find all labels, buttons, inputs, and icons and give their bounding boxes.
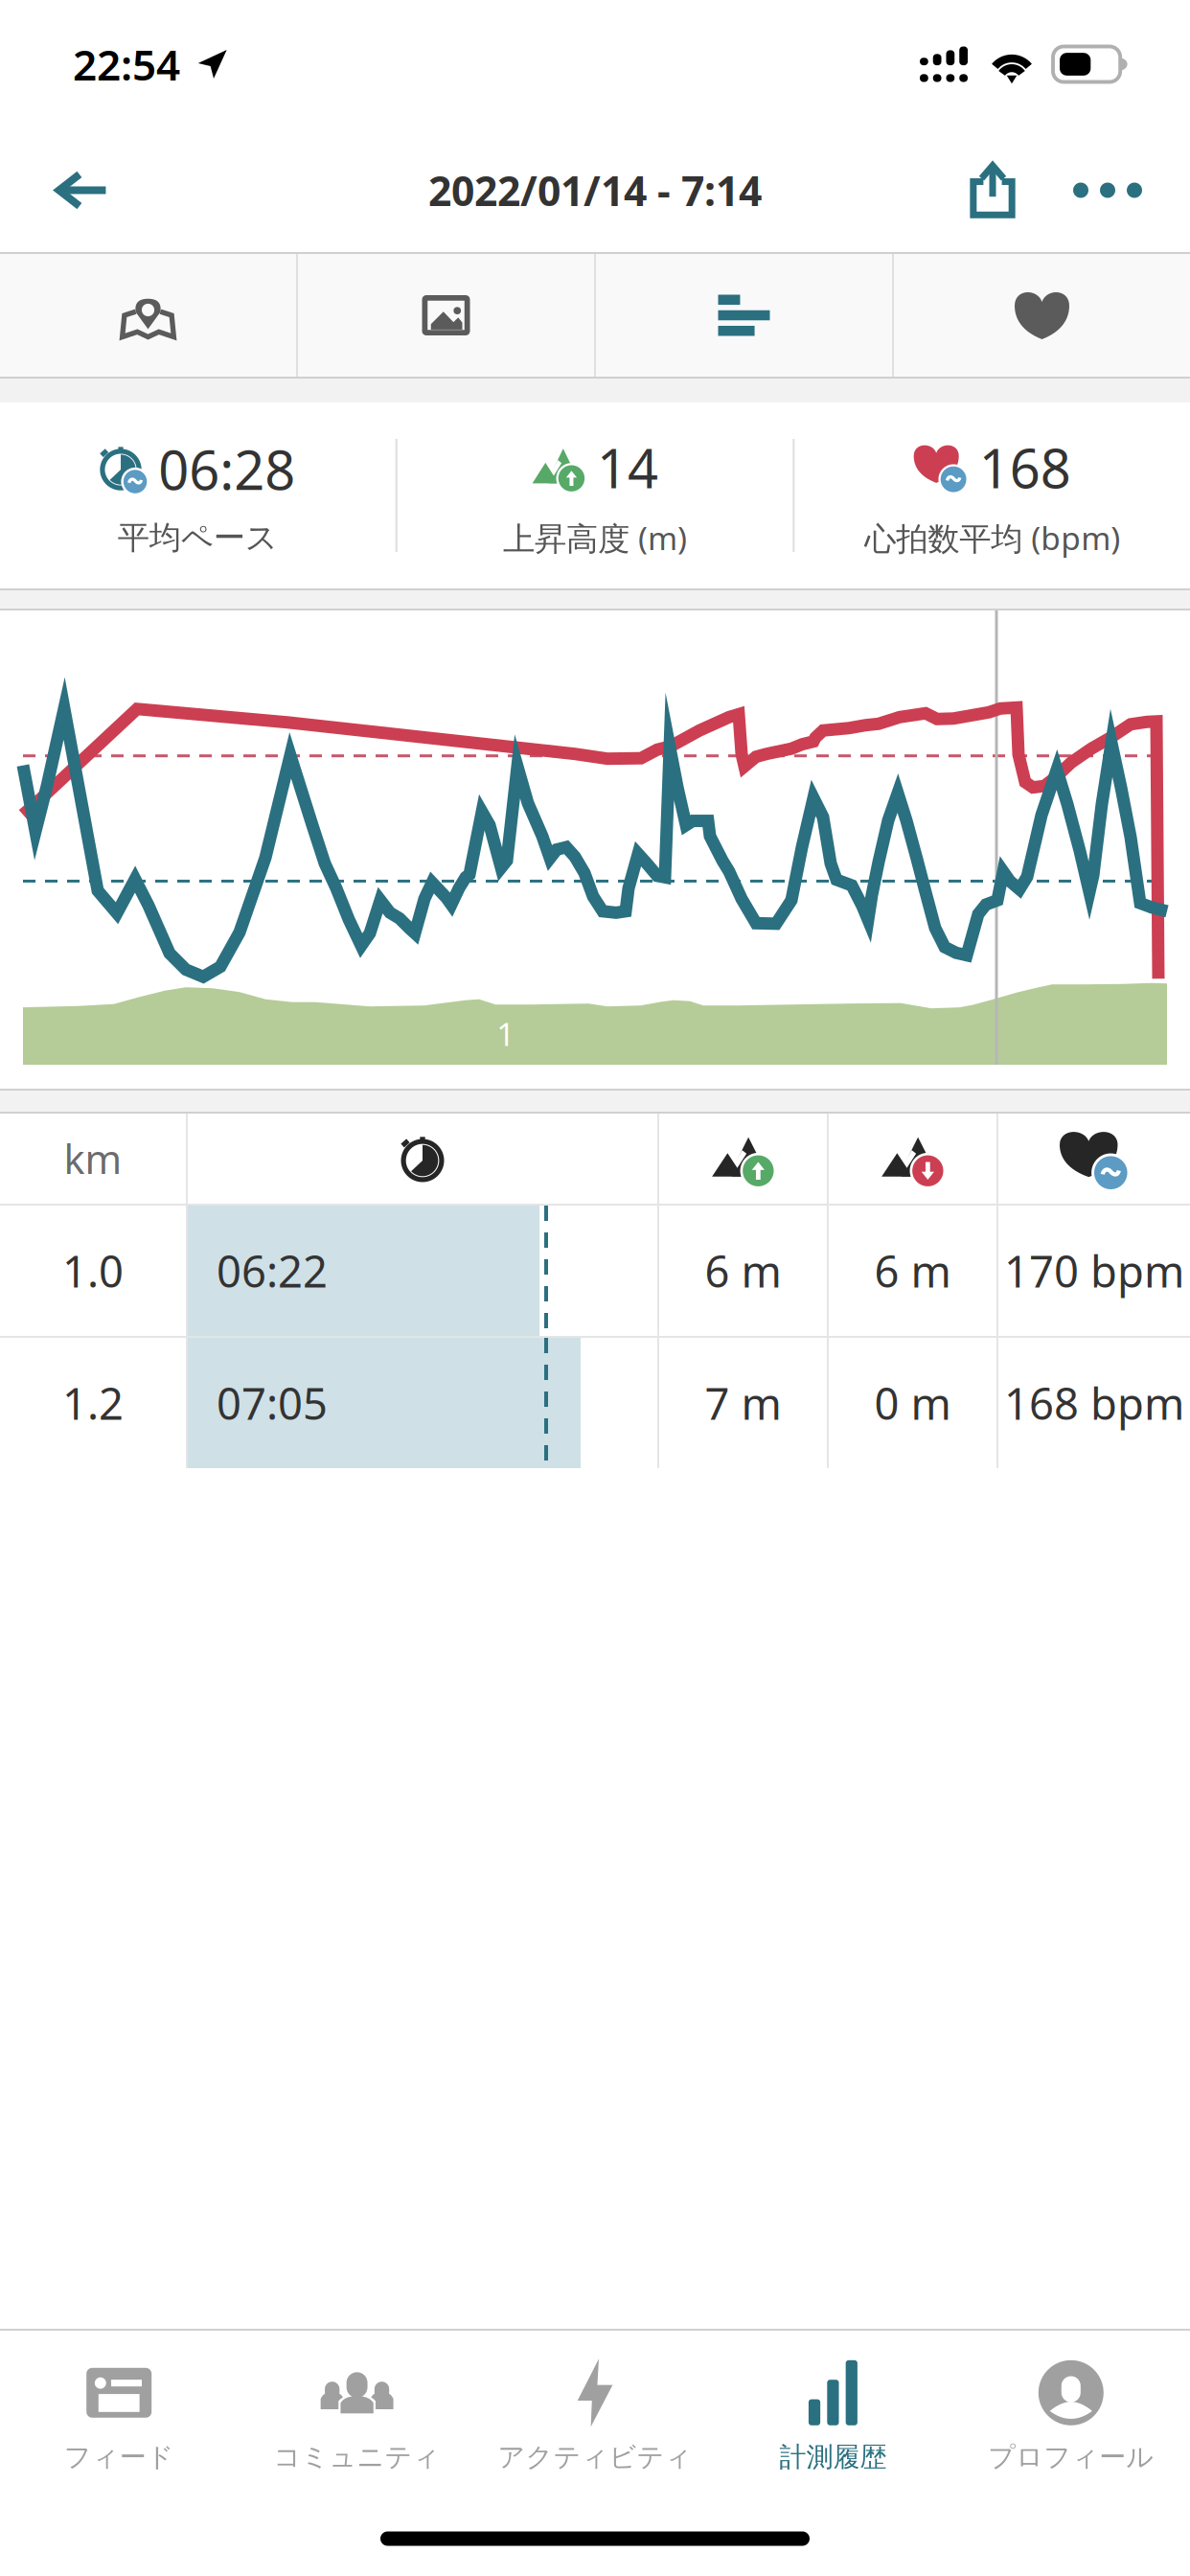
staticText: 07:05 — [217, 1374, 328, 1432]
staticText: 心拍数平均 (bpm) — [864, 517, 1120, 559]
staticText: 06:22 — [217, 1242, 328, 1300]
button[interactable]: フィード — [0, 2339, 238, 2491]
staticText: アクティビティ — [498, 2441, 692, 2474]
staticText: 168 — [979, 432, 1071, 503]
staticText: 平均ペース — [118, 518, 278, 557]
button[interactable]: Share — [935, 133, 1050, 248]
button[interactable]: Map — [0, 252, 296, 379]
staticText: 2022/01/14 - 7:14 — [428, 163, 762, 217]
staticText: 6 m — [874, 1242, 951, 1300]
staticText: 7 m — [705, 1374, 781, 1432]
button[interactable]: Heart rate — [894, 252, 1190, 379]
staticText: 計測履歴 — [779, 2441, 887, 2474]
staticText: 6 m — [705, 1242, 781, 1300]
staticText: プロフィール — [988, 2441, 1154, 2474]
staticText: 06:28 — [158, 433, 295, 505]
staticText: 1.0 — [62, 1242, 124, 1300]
button[interactable]: More — [1050, 133, 1165, 248]
staticText: 1 — [497, 1012, 515, 1055]
staticText: フィード — [64, 2441, 174, 2474]
staticText: 168 bpm — [1004, 1374, 1184, 1432]
staticText: km — [64, 1132, 122, 1185]
button[interactable]: プロフィール — [952, 2339, 1190, 2491]
button[interactable]: 計測履歴 — [714, 2339, 952, 2491]
staticText: 0 m — [874, 1374, 951, 1432]
button[interactable]: Photos — [298, 252, 594, 379]
button[interactable]: アクティビティ — [476, 2339, 714, 2491]
staticText: 1.2 — [62, 1374, 124, 1432]
staticText: 22:54 — [73, 36, 180, 92]
button[interactable]: Charts — [596, 252, 892, 379]
staticText: 170 bpm — [1004, 1242, 1184, 1300]
button[interactable]: Back — [25, 133, 140, 248]
staticText: コミュニティ — [274, 2441, 440, 2474]
staticText: 上昇高度 (m) — [503, 517, 687, 559]
staticText: 14 — [597, 432, 658, 503]
button[interactable]: コミュニティ — [238, 2339, 476, 2491]
